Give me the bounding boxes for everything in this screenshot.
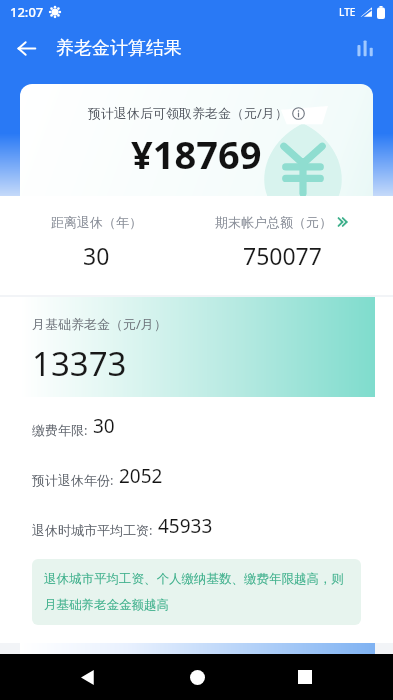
staticText: ¥18769 [131, 128, 262, 180]
button[interactable]: Info [292, 107, 305, 120]
button[interactable]: 退休时城市平均工资: [0, 513, 393, 539]
staticText: 距离退休（年） [51, 214, 142, 230]
staticText: 月基础养老金（元/月） [32, 315, 167, 333]
staticText: 期末帐户总额（元） [215, 214, 332, 230]
button[interactable]: Recents [285, 657, 325, 697]
staticText: 退休时城市平均工资: [32, 521, 153, 539]
staticText: 养老金计算结果 [56, 37, 182, 60]
button[interactable]: 缴费年限: [0, 413, 393, 439]
staticText: 退休城市平均工资、个人缴纳基数、缴费年限越高，则月基础养老金金额越高 [44, 571, 349, 613]
staticText: 30 [83, 240, 110, 271]
staticText: 2052 [119, 463, 163, 489]
staticText: 月个人账户养老金（元/月） [32, 654, 193, 672]
staticText: 45933 [158, 513, 213, 539]
button[interactable]: Back [6, 28, 46, 68]
staticText: 预计退休后可领取养老金（元/月） [88, 104, 288, 122]
button[interactable]: Chart [345, 28, 385, 68]
staticText: 12:07 [10, 3, 44, 21]
staticText: 30 [93, 413, 115, 439]
staticText: 缴费年限: [32, 421, 88, 439]
button[interactable]: Home [177, 657, 217, 697]
staticText: 预计退休年份: [32, 471, 114, 489]
button[interactable]: 距离退休（年） [21, 214, 171, 271]
staticText: LTE [339, 5, 356, 19]
staticText: 13373 [32, 341, 127, 386]
button[interactable]: 期末帐户总额（元） [192, 214, 372, 271]
staticText: 750077 [243, 240, 322, 271]
button[interactable]: Back [68, 657, 108, 697]
button[interactable]: 预计退休后可领取养老金（元/月） [20, 84, 373, 196]
button[interactable]: 预计退休年份: [0, 463, 393, 489]
